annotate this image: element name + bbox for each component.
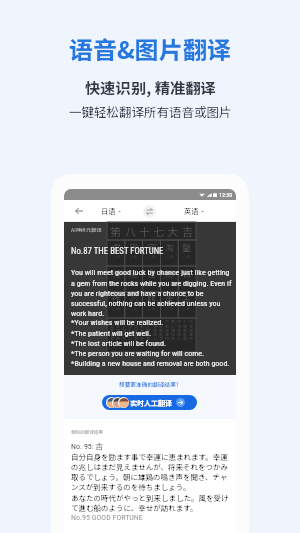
button[interactable]: Swap languages	[134, 200, 164, 222]
button[interactable]: 英语	[183, 200, 205, 222]
staticText: 宅	[147, 241, 157, 254]
staticText: No. 95: 吉	[71, 441, 104, 451]
staticText: 快速识别, 精准翻译	[85, 76, 216, 98]
staticText: 心申	[165, 306, 174, 313]
staticText: 家	[129, 241, 139, 254]
staticText: 行	[112, 267, 122, 280]
staticText: 弱	[147, 293, 157, 306]
staticText: 12:30	[219, 191, 233, 198]
staticText: 心	[129, 293, 139, 306]
staticText: No.87 THE BEST FORTUNE	[71, 246, 164, 256]
staticText: 心申	[129, 280, 138, 287]
staticText: 日语	[101, 206, 116, 216]
staticText: 心申	[165, 254, 174, 261]
staticText: 玉	[182, 293, 192, 306]
staticText: 何 須 苦 用 心	[177, 318, 181, 341]
staticText: あなたの時代がやっと到来しました。風を受けて進む船のように、幸せが訪れます。	[71, 492, 231, 513]
staticText: 一键轻松翻译所有语音或图片	[69, 102, 232, 120]
staticText: 实时人工翻译	[130, 398, 172, 408]
staticText: 心申	[147, 280, 156, 287]
staticText: 千 里 風 雲 會	[159, 318, 163, 341]
staticText: 汾	[165, 267, 175, 280]
button[interactable]: Back	[67, 200, 91, 222]
staticText: 心申	[182, 306, 191, 313]
staticText: 心申	[129, 254, 138, 261]
staticText: 心申	[112, 280, 121, 287]
staticText: 语音&图片翻译	[69, 31, 231, 66]
button[interactable]: 实时人工翻译	[102, 395, 197, 410]
staticText: 想要更准确的翻译结果？	[119, 380, 182, 388]
staticText: 鑿	[182, 241, 192, 254]
staticText: 運	[129, 267, 139, 280]
staticText: 相似的翻译结果	[71, 429, 104, 436]
staticText: 心申	[112, 306, 121, 313]
staticText: 貴 人 相 扶 助	[171, 318, 175, 341]
staticText: 第	[110, 223, 121, 239]
staticText: 大	[167, 223, 178, 239]
staticText: 功 名 遂 意 時	[140, 318, 144, 341]
staticText: 君	[112, 241, 122, 254]
staticText: 心申	[129, 306, 138, 313]
staticText: 心申	[147, 254, 156, 261]
staticText: 金	[165, 293, 175, 306]
staticText: 七	[153, 223, 164, 239]
staticText: 何 須 苦 用 心	[153, 318, 157, 341]
staticText: No.95 GOOD FORTUNE	[71, 513, 143, 522]
staticText: 英语	[184, 206, 199, 216]
staticText: *Your wishes will be realized. *The pati…	[71, 318, 230, 368]
staticText: 石	[182, 267, 192, 280]
staticText: 心申	[147, 306, 156, 313]
staticText: 淘	[165, 241, 175, 254]
staticText: 八	[125, 223, 136, 239]
staticText: 十	[139, 223, 150, 239]
staticText: 功 名 遂 意 時	[165, 318, 169, 341]
staticText: 吉	[182, 223, 193, 239]
staticText: You will meet good luck by chance just l…	[71, 268, 232, 318]
staticText: 舎	[147, 267, 157, 280]
staticText: 心申	[112, 254, 121, 261]
staticText: 千 里 風 雲 會	[134, 318, 138, 341]
staticText: 作	[112, 293, 122, 306]
staticText: 自分自身を励ます事で幸運に恵まれます。幸運の兆しはまだ見えませんが、将来それをつ…	[71, 451, 231, 492]
staticText: 千 里 風 雲 會	[110, 318, 114, 341]
staticText: 千 里 風 雲 會	[183, 318, 187, 341]
staticText: 貴 人 相 扶 助	[122, 318, 126, 341]
staticText: 功 名 遂 意 時	[189, 318, 193, 341]
button[interactable]: 日语	[100, 200, 122, 222]
staticText: 心申	[182, 280, 191, 287]
staticText: 心申	[165, 280, 174, 287]
staticText: 心申	[182, 254, 191, 261]
staticText: 貴 人 相 扶 助	[146, 318, 150, 341]
staticText: AI神经元翻译	[71, 226, 102, 234]
staticText: 功 名 遂 意 時	[116, 318, 120, 341]
staticText: 何 須 苦 用 心	[128, 318, 132, 341]
